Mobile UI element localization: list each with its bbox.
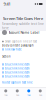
button[interactable]: Tab 2 [11,87,23,98]
button[interactable]: Tab 4 [34,87,46,98]
staticText: Footer caption text line [2,81,32,84]
staticText: A blue link line item [2,63,29,66]
staticText: Tab [16,93,19,96]
staticText: Section [2,55,11,58]
staticText: Body content paragraph [2,44,34,47]
button[interactable]: Tab 1 [0,87,11,98]
staticText: Tab [4,93,7,96]
staticText: 9:41 [3,1,10,7]
staticText: Secondary subtitle text line here [2,22,44,30]
staticText: A blue link line item [2,71,29,74]
staticText: Account Name Label [9,30,40,35]
staticText: A link row here [2,48,21,51]
button[interactable]: Tab 3 [23,87,34,98]
staticText: A blue link line item [2,67,29,70]
staticText: Small caption line of text [5,40,37,43]
staticText: Tab [39,93,42,96]
staticText: Tab [27,93,30,96]
staticText: Screen Title Goes Here [3,16,43,21]
staticText: A blue link line item [2,75,29,78]
